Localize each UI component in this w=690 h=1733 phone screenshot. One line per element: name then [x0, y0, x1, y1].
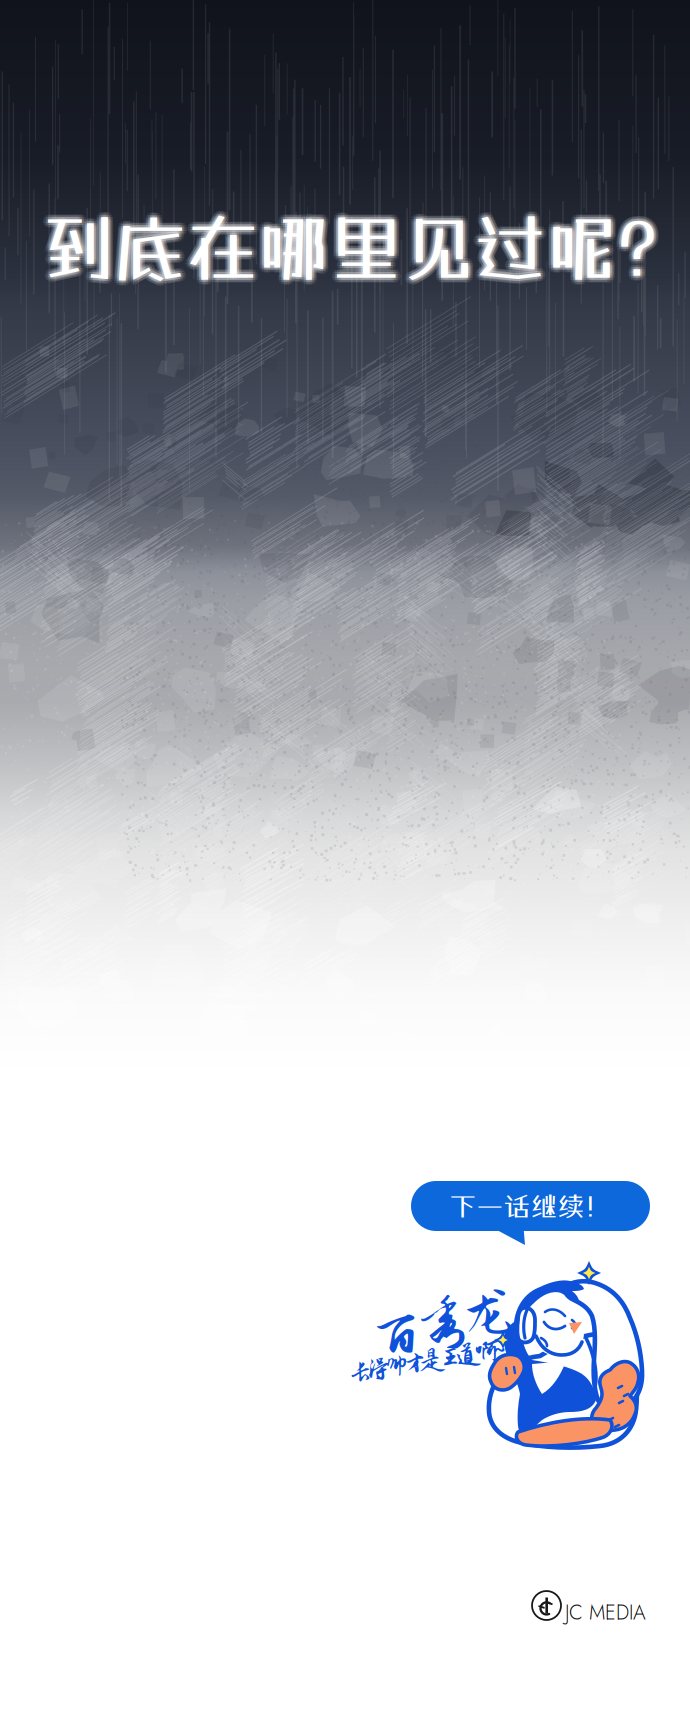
staticText: 得 — [366, 1355, 391, 1383]
staticText: 到底在哪里见过呢? — [38, 207, 653, 292]
staticText: 王 — [438, 1343, 463, 1371]
staticText: 到底在哪里见过呢? — [44, 205, 659, 290]
staticText: 到底在哪里见过呢? — [44, 203, 659, 288]
staticText: 到底在哪里见过呢? — [44, 201, 659, 286]
staticText: 龙 — [462, 1282, 517, 1343]
staticText: 到底在哪里见过呢? — [46, 207, 661, 292]
staticText: 长 — [348, 1358, 373, 1386]
staticText: 秀 — [415, 1292, 470, 1353]
button[interactable]: 下一话继续！ — [411, 1181, 650, 1249]
staticText: 道 — [456, 1340, 481, 1368]
staticText: 到底在哪里见过呢? — [39, 201, 654, 286]
staticText: ~ — [494, 1334, 505, 1362]
staticText: 到底在哪里见过呢? — [44, 207, 659, 292]
staticText: 到底在哪里见过呢? — [39, 209, 654, 294]
staticText: 到底在哪里见过呢? — [37, 205, 652, 290]
staticText: 到底在哪里见过呢? — [46, 202, 661, 287]
staticText: JC MEDIA — [565, 1598, 646, 1627]
staticText: 到底在哪里见过呢? — [42, 207, 657, 292]
staticText: 帅 — [384, 1352, 409, 1380]
staticText: 到底在哪里见过呢? — [40, 205, 655, 290]
staticText: 下一话继续！ — [449, 1190, 611, 1222]
staticText: 到底在哪里见过呢? — [42, 200, 657, 285]
staticText: 百 — [368, 1304, 423, 1365]
staticText: 到底在哪里见过呢? — [38, 203, 653, 288]
staticText: 到底在哪里见过呢? — [40, 203, 655, 288]
staticText: 才 — [402, 1349, 427, 1377]
staticText: 到底在哪里见过呢? — [42, 205, 657, 290]
staticText: 是 — [420, 1346, 445, 1374]
staticText: 到底在哪里见过呢? — [44, 209, 659, 294]
staticText: 啊 — [474, 1337, 499, 1365]
staticText: 到底在哪里见过呢? — [40, 207, 655, 292]
staticText: 到底在哪里见过呢? — [47, 205, 662, 290]
staticText: 到底在哪里见过呢? — [42, 210, 657, 295]
staticText: 到底在哪里见过呢? — [42, 203, 657, 288]
